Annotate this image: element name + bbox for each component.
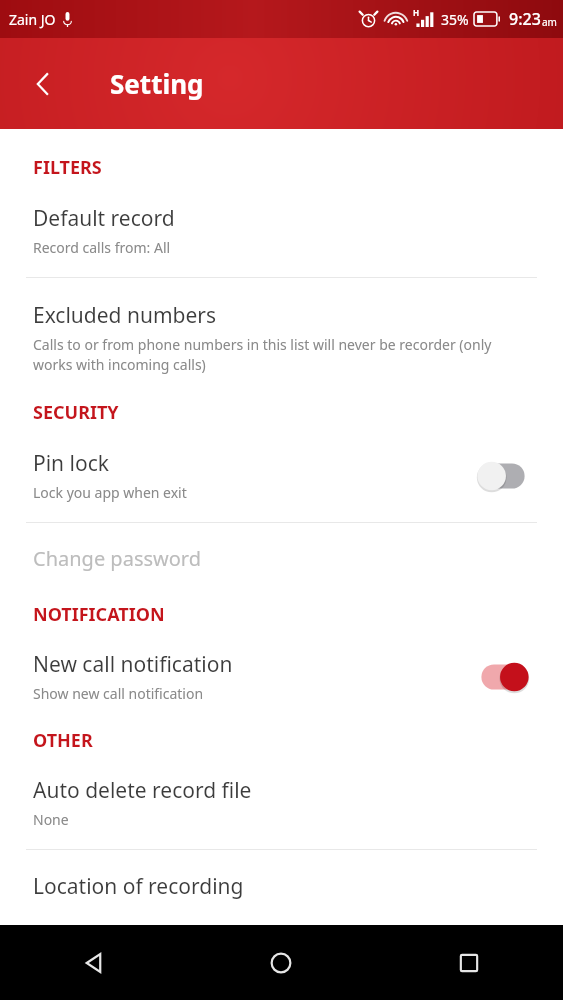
staticText: Lock you app when exit (33, 483, 187, 502)
staticText: Show new call notification (33, 684, 204, 703)
button[interactable]: Home (187, 925, 375, 1000)
button[interactable]: New call notification (0, 650, 563, 703)
staticText: Calls to or from phone numbers in this l… (33, 335, 530, 374)
button[interactable]: Back (14, 55, 72, 113)
button[interactable]: Change password (0, 538, 563, 579)
staticText: Pin lock (33, 449, 109, 478)
staticText: Record calls from: All (33, 238, 171, 257)
staticText: am (542, 15, 557, 29)
button[interactable]: Back (0, 925, 187, 1000)
staticText: Setting (110, 66, 204, 101)
button[interactable]: Recent apps (375, 925, 563, 1000)
staticText: NOTIFICATION (33, 602, 165, 627)
staticText: Excluded numbers (33, 301, 217, 330)
button[interactable]: Pin lock (0, 449, 563, 502)
staticText: 35% (441, 10, 469, 29)
button[interactable]: Location of recording (0, 872, 563, 901)
button[interactable]: Toggle off (476, 459, 530, 493)
staticText: OTHER (33, 728, 93, 753)
staticText: Auto delete record file (33, 776, 252, 805)
staticText: None (33, 810, 69, 829)
staticText: SECURITY (33, 400, 119, 425)
staticText: Change password (33, 545, 202, 572)
button[interactable]: Excluded numbers (0, 301, 563, 374)
button[interactable]: Default record (0, 204, 563, 257)
staticText: Zain JO (9, 10, 56, 29)
button[interactable]: Toggle on (476, 660, 530, 694)
staticText: Default record (33, 204, 175, 233)
staticText: New call notification (33, 650, 233, 679)
staticText: 9:23 (509, 8, 541, 30)
button[interactable]: Auto delete record file (0, 776, 563, 829)
staticText: H (413, 7, 420, 18)
staticText: FILTERS (33, 155, 102, 180)
staticText: Location of recording (33, 872, 244, 901)
